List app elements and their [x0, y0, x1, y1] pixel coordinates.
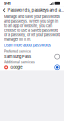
- button[interactable]: Back: [1, 6, 7, 14]
- button[interactable]: Learn more about passwords: [4, 42, 60, 47]
- staticText: Passwords, passkeys and a…: [7, 8, 64, 13]
- staticText: Additional services: [4, 60, 35, 64]
- staticText: 9:41: [4, 1, 11, 6]
- staticText: Google: [10, 65, 22, 70]
- staticText: Samsung Pass: [4, 54, 31, 59]
- staticText: Manage and save your passwords and passk…: [4, 14, 60, 42]
- staticText: Preferred service: [4, 49, 31, 53]
- staticText: Learn more about passwords: [4, 43, 51, 47]
- button[interactable]: Google: [0, 64, 64, 70]
- button[interactable]: Samsung Pass: [0, 53, 64, 60]
